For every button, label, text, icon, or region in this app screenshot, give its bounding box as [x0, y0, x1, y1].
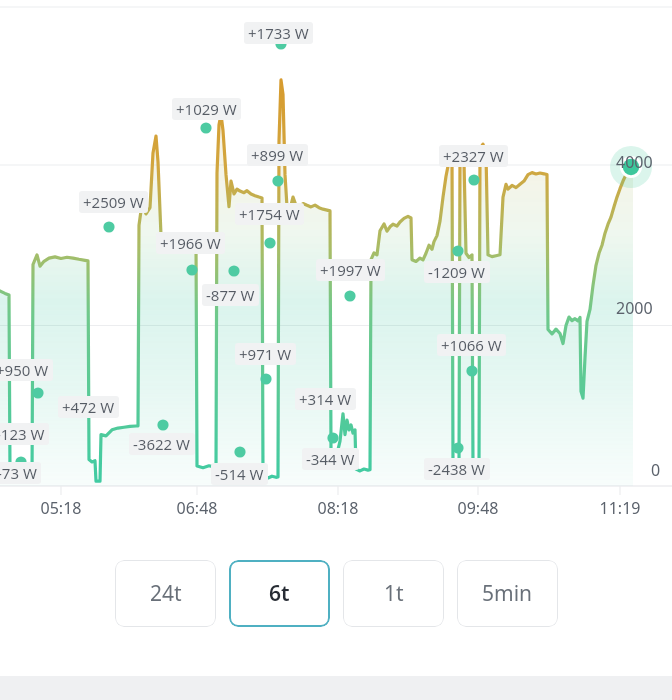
staticText: 0	[651, 459, 661, 481]
staticText: 2000	[616, 297, 653, 319]
staticText: +1733 W	[248, 23, 309, 43]
staticText: +2327 W	[443, 146, 504, 166]
staticText: 5min	[482, 579, 533, 608]
staticText: +1029 W	[176, 99, 237, 119]
staticText: 11:19	[575, 497, 665, 519]
button[interactable]: 24t	[115, 560, 216, 627]
staticText: +1754 W	[239, 204, 300, 224]
staticText: +314 W	[299, 389, 352, 409]
staticText: +1997 W	[320, 260, 381, 280]
staticText: -2438 W	[428, 459, 486, 479]
staticText: +950 W	[0, 360, 49, 380]
staticText: -123 W	[0, 424, 45, 444]
button[interactable]: 6t	[229, 560, 330, 627]
staticText: -344 W	[306, 449, 355, 469]
staticText: 06:48	[152, 497, 242, 519]
staticText: 05:18	[16, 497, 106, 519]
staticText: 09:48	[433, 497, 523, 519]
staticText: -514 W	[215, 464, 264, 484]
staticText: 08:18	[293, 497, 383, 519]
staticText: +2509 W	[83, 192, 144, 212]
staticText: +899 W	[251, 145, 304, 165]
staticText: +1066 W	[441, 335, 502, 355]
staticText: -3622 W	[133, 434, 191, 454]
staticText: 1t	[384, 579, 404, 608]
staticText: +1966 W	[160, 233, 221, 253]
staticText: -1209 W	[428, 262, 486, 282]
staticText: 6t	[269, 579, 290, 608]
staticText: -877 W	[206, 285, 255, 305]
staticText: +472 W	[62, 397, 115, 417]
staticText: -73 W	[0, 463, 37, 483]
staticText: 24t	[150, 579, 182, 608]
staticText: +971 W	[239, 344, 292, 364]
staticText: 4000	[616, 151, 653, 173]
button[interactable]: 5min	[457, 560, 558, 627]
button[interactable]: 1t	[343, 560, 444, 627]
